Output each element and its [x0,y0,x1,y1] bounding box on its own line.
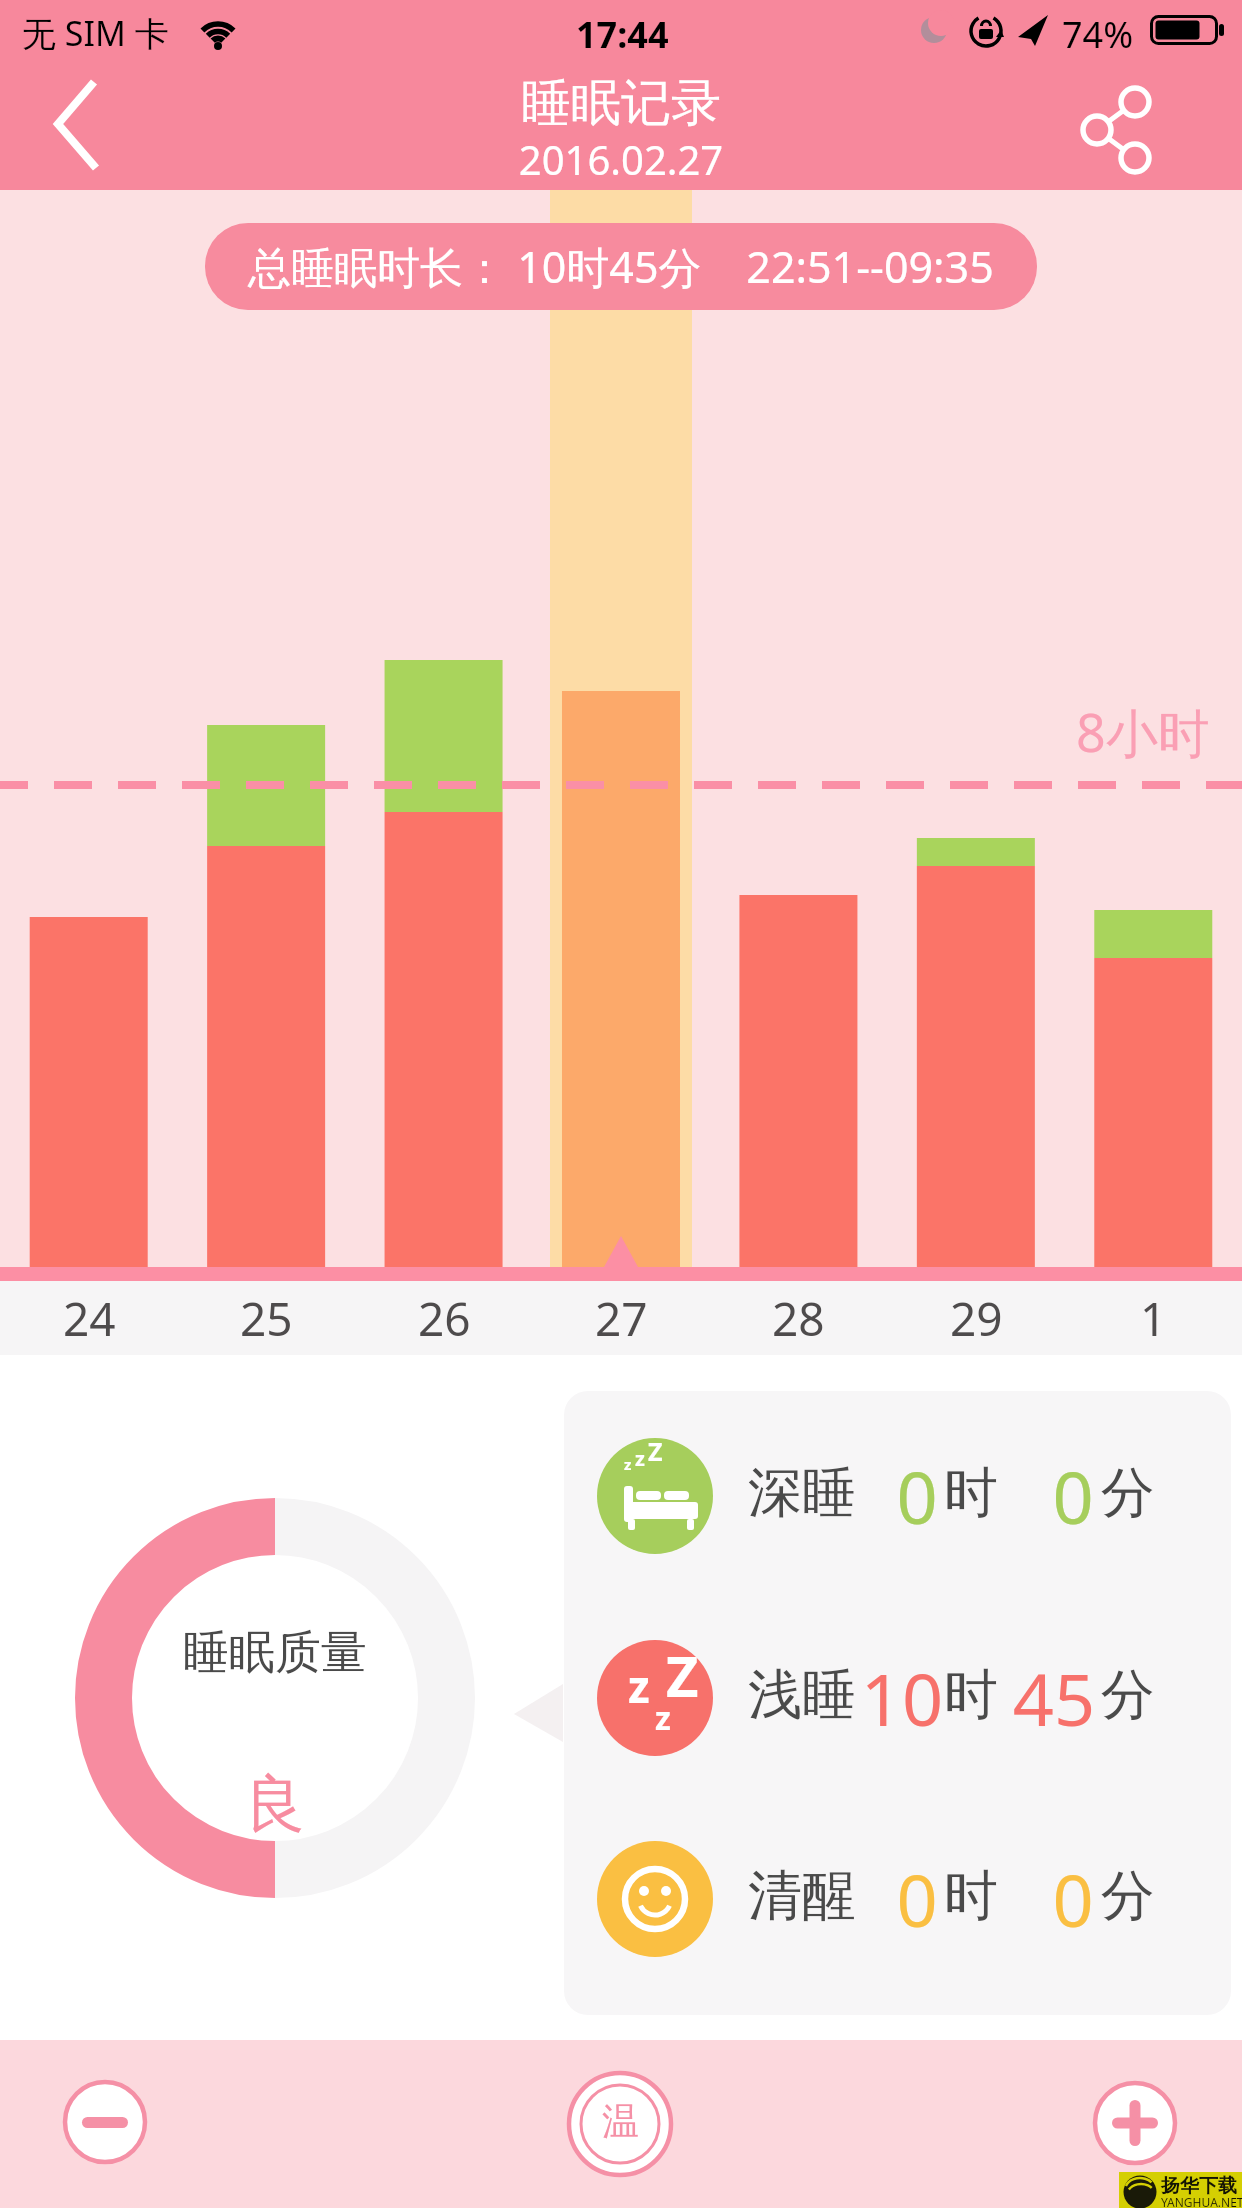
staticText: 分 [1101,1862,1155,1930]
staticText: 10 [837,1649,967,1747]
button[interactable]: 总睡眠时长： 10时45分 22:51--09:35 [205,223,1037,310]
button[interactable] [20,70,130,180]
button[interactable]: z [564,1391,1231,1601]
staticText: 45 [989,1649,1119,1747]
staticText: 时 [944,1862,998,1930]
staticText: 0 [852,1447,982,1545]
staticText: z [628,1656,650,1716]
staticText: 时 [944,1661,998,1729]
staticText: 扬华下载 [1161,2174,1237,2198]
staticText: 良 [225,1765,325,1843]
staticText: 分 [1101,1459,1155,1527]
staticText: 17:44 [576,10,669,59]
staticText: 25 [240,1287,293,1350]
staticText: 0 [852,1850,982,1948]
button[interactable] [1093,2081,1177,2165]
staticText: z [624,1454,632,1474]
staticText: 无 SIM 卡 [22,10,169,56]
staticText: 深睡 [748,1459,856,1527]
button[interactable]: 温 [566,2070,674,2178]
staticText: 74% [1062,10,1134,59]
staticText: z [635,1445,645,1472]
staticText: YANGHUA.NET [1161,2194,1242,2208]
staticText: Z [648,1434,663,1468]
staticText: 24 [63,1287,116,1350]
staticText: 清醒 [748,1862,856,1930]
staticText: 睡眠记录 [521,72,721,135]
staticText: 分 [1101,1661,1155,1729]
staticText: 27 [595,1287,648,1350]
staticText: z [655,1696,671,1740]
staticText: 睡眠质量 [175,1624,375,1682]
staticText: 1 [1140,1287,1167,1350]
staticText: 浅睡 [748,1661,856,1729]
staticText: 8小时 [1076,696,1210,767]
staticText: 26 [418,1287,471,1350]
staticText: 总睡眠时长： 10时45分 22:51--09:35 [248,237,994,296]
button[interactable]: Z [564,1593,1231,1803]
staticText: 0 [1008,1850,1138,1948]
staticText: 0 [1008,1447,1138,1545]
staticText: 29 [950,1287,1003,1350]
button[interactable]: 清醒 [564,1794,1231,2004]
button[interactable] [63,2080,147,2164]
staticText: 28 [772,1287,825,1350]
staticText: Z [666,1637,699,1713]
staticText: 2016.02.27 [496,132,746,186]
staticText: 时 [944,1459,998,1527]
button[interactable] [1070,80,1180,180]
staticText: 温 [602,2098,639,2145]
